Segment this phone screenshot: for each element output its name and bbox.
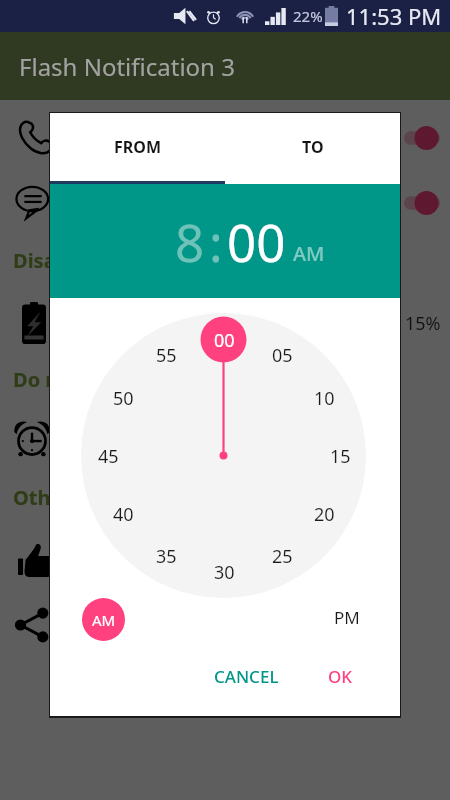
staticText: 45 (98, 444, 119, 469)
button[interactable]: 50 (101, 385, 145, 411)
staticText: PM (334, 606, 360, 629)
staticText: AM (92, 610, 116, 630)
staticText: 15 (330, 444, 351, 469)
button[interactable]: 05 (260, 342, 304, 368)
staticText: 00 (214, 328, 235, 353)
staticText: 35 (156, 544, 177, 569)
staticText: 22% (293, 6, 323, 26)
button[interactable]: 15 (318, 443, 362, 469)
button[interactable]: 40 (101, 501, 145, 527)
staticText: : (209, 207, 223, 276)
button[interactable]: 00 (227, 207, 286, 276)
staticText: 11:53 PM (346, 1, 442, 31)
button[interactable]: AM (82, 598, 125, 641)
button[interactable]: 10 (302, 385, 346, 411)
button[interactable]: Rate this app (0, 536, 450, 592)
staticText: Do not disturb (13, 366, 157, 393)
staticText: TO (302, 136, 324, 158)
button[interactable]: CANCEL (200, 656, 292, 696)
staticText: 20 (314, 502, 335, 527)
staticText: OK (328, 665, 353, 688)
staticText: Disable in Silent Mode (13, 247, 234, 274)
staticText: Flash Notification 3 (19, 50, 235, 83)
button[interactable]: TO (225, 113, 400, 181)
button[interactable]: Share this app (0, 598, 450, 654)
staticText: 50 (113, 386, 134, 411)
staticText: AM (293, 240, 325, 267)
staticText: FROM (114, 136, 162, 158)
staticText: Other (13, 484, 72, 511)
staticText: 30 (214, 560, 235, 585)
staticText: 15% (405, 311, 441, 336)
button[interactable]: 00 (202, 327, 246, 353)
button[interactable]: Battery level limit (0, 292, 450, 354)
staticText: 05 (272, 343, 293, 368)
staticText: 8 (175, 207, 205, 276)
button[interactable]: OK (309, 656, 371, 696)
staticText: 25 (272, 544, 293, 569)
button[interactable]: Flash on incoming SMS (0, 176, 450, 234)
staticText: 40 (113, 502, 134, 527)
button[interactable]: Flash on incoming call (0, 112, 450, 170)
button[interactable]: 25 (260, 543, 304, 569)
button[interactable]: 55 (144, 342, 188, 368)
button[interactable]: 30 (202, 559, 246, 585)
button[interactable]: Flash on call toggle (404, 126, 449, 150)
button[interactable]: 45 (86, 443, 130, 469)
button[interactable]: Do not disturb schedule (0, 410, 450, 468)
button[interactable]: 8 (175, 207, 205, 276)
staticText: 10 (314, 386, 335, 411)
button[interactable]: 20 (302, 501, 346, 527)
staticText: 55 (156, 343, 177, 368)
button[interactable]: Flash on SMS toggle (404, 191, 449, 215)
button[interactable]: PM (319, 596, 374, 639)
staticText: CANCEL (214, 665, 279, 688)
button[interactable]: 35 (144, 543, 188, 569)
staticText: 00 (227, 207, 286, 276)
button[interactable]: FROM (50, 113, 225, 181)
